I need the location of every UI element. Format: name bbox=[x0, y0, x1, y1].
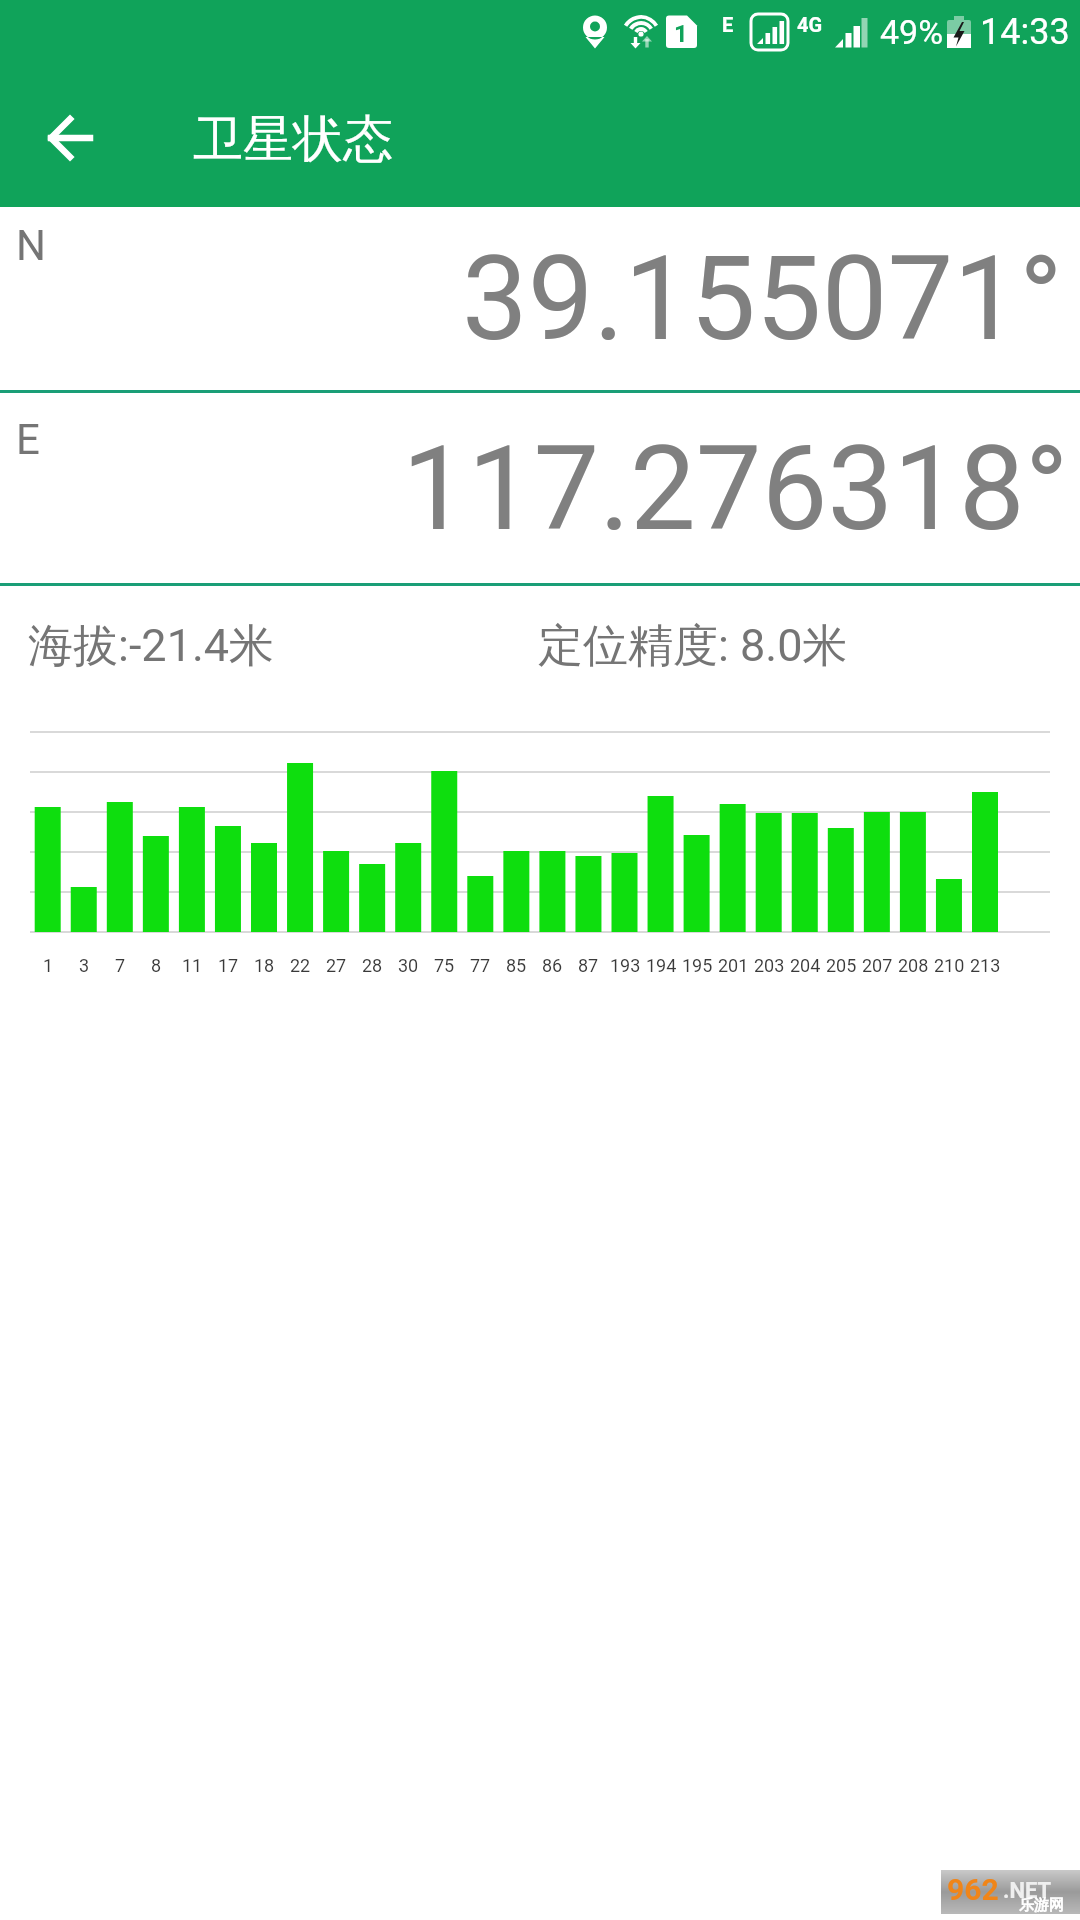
staticText: E bbox=[722, 13, 734, 36]
staticText: 11 bbox=[182, 955, 203, 976]
staticText: 49% bbox=[880, 12, 944, 52]
staticText: 207 bbox=[862, 955, 893, 976]
staticText: 27 bbox=[326, 955, 347, 976]
staticText: 203 bbox=[754, 955, 785, 976]
staticText: 1 bbox=[43, 955, 54, 976]
staticText: 14:33 bbox=[980, 11, 1070, 53]
staticText: 204 bbox=[790, 955, 821, 976]
staticText: 193 bbox=[610, 955, 641, 976]
staticText: 乐游网 bbox=[1019, 1896, 1064, 1915]
staticText: 1 bbox=[674, 20, 688, 48]
staticText: 28 bbox=[362, 955, 383, 976]
staticText: 195 bbox=[682, 955, 713, 976]
staticText: 86 bbox=[542, 955, 563, 976]
staticText: 210 bbox=[934, 955, 965, 976]
staticText: 30 bbox=[398, 955, 419, 976]
staticText: 117.276318° bbox=[402, 420, 1069, 557]
staticText: 8 bbox=[151, 955, 162, 976]
staticText: 194 bbox=[646, 955, 677, 976]
staticText: E bbox=[16, 415, 40, 464]
staticText: 208 bbox=[898, 955, 929, 976]
staticText: 18 bbox=[254, 955, 275, 976]
staticText: 201 bbox=[718, 955, 749, 976]
staticText: 7 bbox=[115, 955, 126, 976]
staticText: 39.155071° bbox=[462, 230, 1063, 367]
staticText: 77 bbox=[470, 955, 491, 976]
staticText: 85 bbox=[506, 955, 527, 976]
staticText: .NET bbox=[1003, 1878, 1052, 1904]
staticText: 海拔:-21.4米 bbox=[28, 618, 275, 675]
staticText: 87 bbox=[578, 955, 599, 976]
staticText: 定位精度: 8.0米 bbox=[538, 618, 848, 675]
staticText: 75 bbox=[434, 955, 455, 976]
staticText: 17 bbox=[218, 955, 239, 976]
staticText: 962 bbox=[947, 1872, 999, 1907]
staticText: 4G bbox=[797, 13, 823, 36]
staticText: N bbox=[16, 221, 46, 270]
staticText: 22 bbox=[290, 955, 311, 976]
staticText: 3 bbox=[79, 955, 90, 976]
staticText: 卫星状态 bbox=[193, 108, 393, 171]
button[interactable] bbox=[22, 90, 118, 186]
staticText: 213 bbox=[970, 955, 1001, 976]
staticText: 205 bbox=[826, 955, 857, 976]
